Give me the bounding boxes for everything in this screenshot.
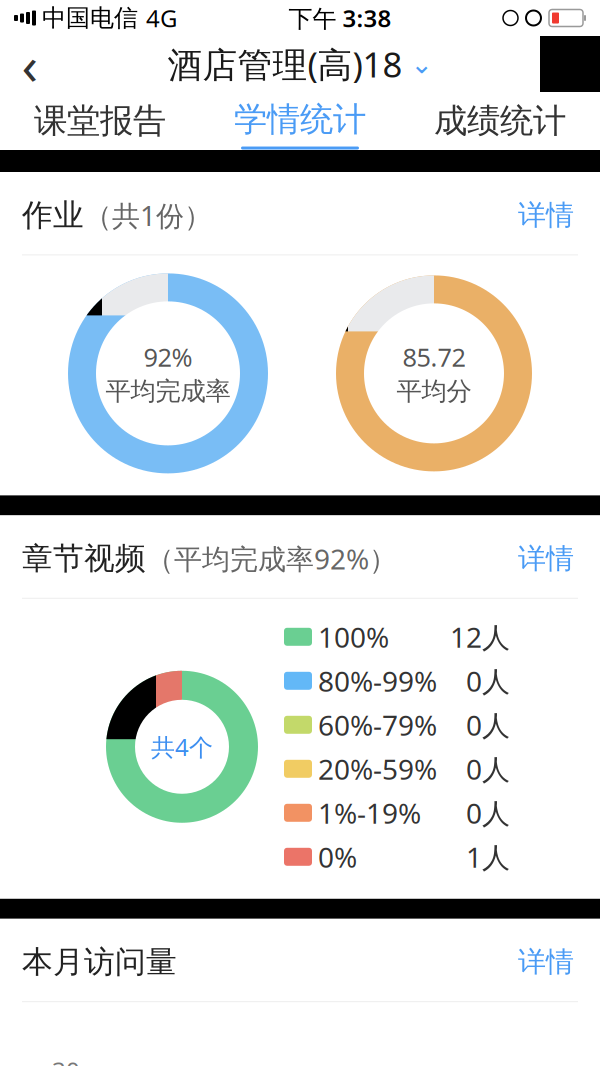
- staticText: 0人: [466, 750, 510, 787]
- staticText: 详情: [518, 198, 574, 232]
- staticText: 成绩统计: [434, 100, 566, 141]
- staticText: 1%-19%: [318, 794, 421, 831]
- staticText: 80%-99%: [318, 662, 437, 699]
- staticText: 学情统计: [234, 99, 366, 140]
- staticText: 中国电信: [42, 3, 138, 33]
- button[interactable]: Back: [0, 36, 60, 92]
- button[interactable]: 成绩统计: [400, 92, 600, 150]
- staticText: 85.72: [402, 340, 465, 374]
- staticText: ⌄: [410, 49, 432, 79]
- button[interactable]: 学情统计: [200, 92, 400, 150]
- staticText: 0人: [466, 794, 510, 831]
- staticText: 1人: [466, 838, 510, 875]
- staticText: （平均完成率92%）: [146, 540, 397, 577]
- staticText: 课堂报告: [34, 100, 166, 141]
- staticText: 平均分: [396, 376, 471, 407]
- staticText: 章节视频: [22, 540, 146, 577]
- staticText: 0人: [466, 662, 510, 699]
- staticText: 12人: [450, 618, 510, 655]
- staticText: 酒店管理(高)18: [167, 41, 402, 87]
- staticText: 0%: [318, 838, 357, 875]
- button[interactable]: 酒店管理(高)18: [167, 41, 432, 87]
- staticText: 4G: [146, 2, 177, 34]
- staticText: 100%: [318, 618, 389, 655]
- staticText: 0人: [466, 706, 510, 743]
- button[interactable]: 详情: [514, 939, 578, 985]
- staticText: 作业: [22, 196, 84, 234]
- staticText: 平均完成率: [105, 376, 230, 407]
- button[interactable]: 详情: [514, 535, 578, 582]
- staticText: 详情: [518, 945, 574, 979]
- staticText: 30: [52, 1054, 80, 1066]
- staticText: 详情: [518, 541, 574, 576]
- button[interactable]: 课堂报告: [0, 92, 200, 150]
- staticText: ‹: [21, 29, 38, 99]
- staticText: （共1份）: [84, 197, 212, 234]
- staticText: 60%-79%: [318, 706, 437, 743]
- staticText: 20%-59%: [318, 750, 437, 787]
- staticText: 本月访问量: [22, 943, 177, 981]
- staticText: 92%: [143, 340, 192, 374]
- button[interactable]: 详情: [514, 192, 578, 238]
- staticText: 共4个: [151, 731, 213, 763]
- staticText: 下午 3:38: [288, 2, 391, 34]
